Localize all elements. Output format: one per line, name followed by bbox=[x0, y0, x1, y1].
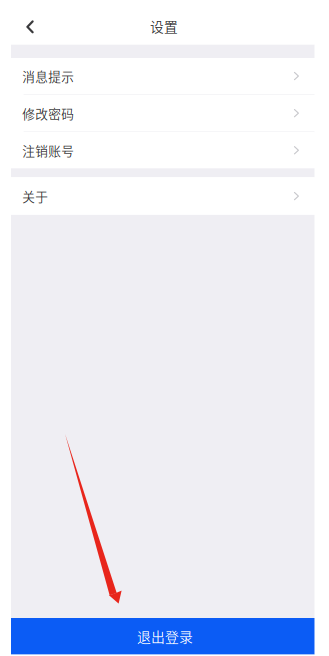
button[interactable]: 关于 bbox=[11, 177, 315, 215]
button[interactable]: 修改密码 bbox=[11, 95, 315, 131]
button[interactable]: 消息提示 bbox=[11, 58, 315, 94]
staticText: 关于 bbox=[22, 187, 48, 205]
button[interactable]: 注销账号 bbox=[11, 132, 315, 168]
staticText: 注销账号 bbox=[22, 141, 74, 159]
staticText: 设置 bbox=[150, 16, 178, 36]
staticText: 消息提示 bbox=[22, 67, 74, 85]
button[interactable]: 退出登录 bbox=[11, 618, 315, 655]
staticText: 退出登录 bbox=[137, 626, 193, 646]
staticText: 修改密码 bbox=[22, 104, 74, 122]
button[interactable]: Back bbox=[0, 9, 60, 45]
